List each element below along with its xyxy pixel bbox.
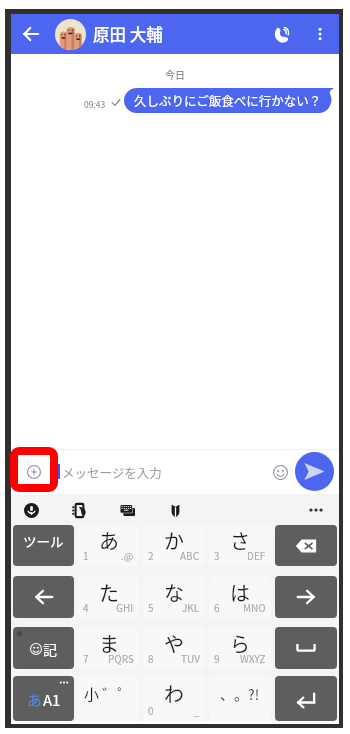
button[interactable]: Emoji <box>268 460 292 484</box>
button[interactable]: 、。?! <box>209 676 271 721</box>
staticText: さ <box>230 526 250 555</box>
staticText: あ <box>27 689 43 711</box>
button[interactable]: More options <box>304 498 328 522</box>
staticText: な <box>164 578 184 607</box>
button[interactable]: Move cursor left <box>13 576 74 618</box>
staticText: ま <box>99 629 119 658</box>
button[interactable]: Delete <box>275 525 337 566</box>
staticText: 3 <box>214 548 220 562</box>
staticText: わ <box>164 679 184 708</box>
staticText: JKL <box>182 600 200 614</box>
staticText: メッセージを入力 <box>62 463 162 481</box>
button[interactable]: Space <box>275 627 337 669</box>
button[interactable]: や <box>143 627 205 669</box>
staticText: 1 <box>83 548 89 562</box>
button[interactable]: た <box>78 576 139 618</box>
staticText: や <box>164 629 184 658</box>
staticText: か <box>164 526 184 555</box>
staticText: 記 <box>43 639 57 659</box>
staticText: 久しぶりにご飯食べに行かない？ <box>134 91 322 109</box>
staticText: DEF <box>247 548 266 562</box>
button[interactable]: Add attachment <box>19 457 49 487</box>
button[interactable]: Enter <box>275 676 337 721</box>
button[interactable]: Move cursor right <box>275 576 337 618</box>
staticText: _ <box>194 703 200 717</box>
staticText: 、。?! <box>220 684 260 704</box>
button[interactable]: Voice input <box>19 498 43 522</box>
button[interactable]: Back <box>18 21 44 47</box>
staticText: 2 <box>148 548 154 562</box>
staticText: 0 <box>148 703 154 717</box>
button[interactable]: あ <box>13 676 74 721</box>
button[interactable]: あ <box>78 525 139 566</box>
button[interactable]: Voice call <box>267 20 295 48</box>
staticText: .@ <box>121 548 134 562</box>
staticText: 原田 大輔 <box>93 22 163 46</box>
button[interactable]: か <box>143 525 205 566</box>
staticText: た <box>99 578 119 607</box>
staticText: PQRS <box>108 651 134 665</box>
button[interactable]: 久しぶりにご飯食べに行かない？ <box>124 88 334 113</box>
staticText: 09:43 <box>84 98 106 110</box>
button[interactable]: Send <box>295 452 334 491</box>
staticText: ら <box>230 629 250 658</box>
staticText: ツール <box>23 531 64 551</box>
staticText: は <box>230 578 250 607</box>
staticText: あ <box>99 526 119 555</box>
button[interactable]: Profile photo <box>55 19 86 50</box>
staticText: 6 <box>214 600 220 614</box>
staticText: TUV <box>181 651 200 665</box>
staticText: 7 <box>83 651 89 665</box>
staticText: 小 ゛゜ <box>84 683 133 705</box>
button[interactable]: Switch keyboard <box>115 498 139 522</box>
staticText: A1 <box>43 689 61 711</box>
button[interactable]: ら <box>209 627 271 669</box>
button[interactable]: な <box>143 576 205 618</box>
button[interactable]: 小 ゛゜ <box>78 676 139 721</box>
button[interactable]: Clipboard <box>163 498 187 522</box>
staticText: WXYZ <box>240 651 266 665</box>
button[interactable]: More options <box>307 21 333 47</box>
staticText: GHI <box>116 600 134 614</box>
staticText: 4 <box>83 600 89 614</box>
button[interactable]: 記 <box>13 627 74 669</box>
button[interactable]: ツール <box>13 525 74 566</box>
staticText: 8 <box>148 651 154 665</box>
staticText: 今日 <box>11 67 339 81</box>
button[interactable]: Handwriting input <box>67 498 91 522</box>
button[interactable]: さ <box>209 525 271 566</box>
button[interactable]: は <box>209 576 271 618</box>
staticText: 5 <box>148 600 154 614</box>
staticText: 9 <box>214 651 220 665</box>
button[interactable]: ま <box>78 627 139 669</box>
staticText: MNO <box>243 600 266 614</box>
button[interactable]: わ <box>143 676 205 721</box>
staticText: ABC <box>180 548 200 562</box>
